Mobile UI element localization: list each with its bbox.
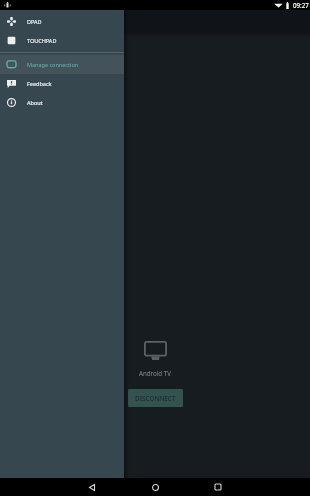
button[interactable]: DPAD <box>0 12 124 31</box>
staticText: DISCONNECT <box>135 394 176 403</box>
staticText: Feedback <box>27 80 52 87</box>
button[interactable]: TOUCHPAD <box>0 31 124 50</box>
button[interactable]: DISCONNECT <box>128 389 183 407</box>
button[interactable]: Home <box>135 478 175 496</box>
button[interactable]: Manage connection <box>0 55 124 74</box>
staticText: DPAD <box>27 18 42 25</box>
staticText: Manage connection <box>27 61 79 68</box>
staticText: 09:27 <box>293 1 309 9</box>
button[interactable]: Back <box>72 478 112 496</box>
staticText: TOUCHPAD <box>27 37 57 44</box>
staticText: Android TV <box>139 369 171 377</box>
button[interactable]: About <box>0 93 124 112</box>
button[interactable] <box>0 0 310 34</box>
button[interactable]: Feedback <box>0 74 124 93</box>
button[interactable]: Recent apps <box>198 478 238 496</box>
staticText: About <box>27 99 43 106</box>
